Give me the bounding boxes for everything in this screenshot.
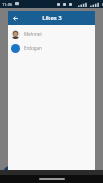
staticText: Mehmet: [24, 31, 42, 37]
button[interactable]: Mehmet: [8, 27, 95, 41]
staticText: 11:06: [2, 2, 13, 7]
staticText: Likes 3: [42, 14, 62, 22]
button[interactable]: Back: [10, 13, 20, 23]
button[interactable]: Add: [3, 166, 17, 180]
button[interactable]: Erdogan: [8, 41, 95, 55]
staticText: Erdogan: [24, 45, 42, 51]
